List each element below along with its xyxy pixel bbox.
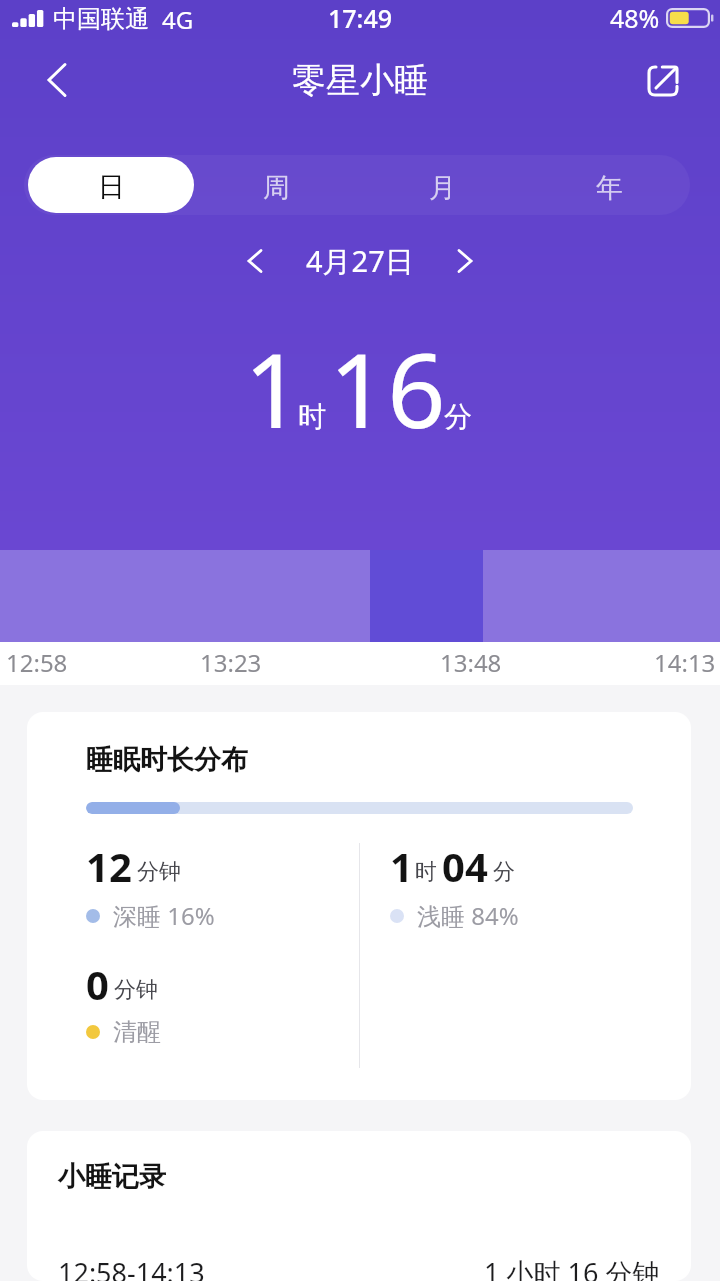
staticText: 4G (162, 3, 194, 36)
staticText: 17:49 (328, 1, 393, 35)
button[interactable]: 月 (356, 155, 523, 215)
staticText: 时 (415, 858, 437, 886)
staticText: 清醒 (113, 1017, 161, 1047)
button[interactable]: Back (27, 50, 87, 110)
staticText: 睡眠时长分布 (86, 743, 248, 777)
button[interactable]: Previous day (230, 236, 280, 286)
staticText: 日 (98, 170, 125, 204)
button[interactable]: Share (633, 51, 693, 111)
staticText: 分 (444, 399, 472, 434)
button[interactable]: 小睡记录 (27, 1131, 691, 1281)
staticText: 12:58 (6, 646, 68, 679)
staticText: 13:48 (440, 646, 502, 679)
button[interactable]: 年 (523, 155, 690, 215)
staticText: 小睡记录 (58, 1160, 166, 1194)
staticText: 0 (86, 957, 109, 1011)
staticText: 分 (493, 858, 515, 886)
staticText: 1 小时 16 分钟 (484, 1254, 660, 1281)
staticText: 月 (429, 171, 456, 205)
staticText: 分钟 (137, 858, 181, 886)
button[interactable]: 日 (28, 157, 194, 213)
staticText: 4月27日 (306, 241, 414, 281)
staticText: 深睡 16% (113, 899, 215, 932)
staticText: 1 (390, 839, 413, 893)
staticText: 13:23 (200, 646, 262, 679)
staticText: 周 (263, 171, 290, 205)
staticText: 16 (329, 319, 446, 458)
staticText: 浅睡 84% (417, 899, 519, 932)
staticText: 分钟 (114, 976, 158, 1004)
staticText: 48% (610, 1, 660, 35)
staticText: 时 (298, 399, 326, 434)
staticText: 零星小睡 (292, 59, 428, 102)
staticText: 12:58-14:13 (58, 1254, 205, 1281)
staticText: 14:13 (654, 646, 716, 679)
staticText: 1 (244, 319, 303, 458)
staticText: 04 (442, 839, 488, 893)
staticText: 年 (596, 171, 623, 205)
staticText: 中国联通 (53, 4, 149, 34)
button[interactable]: Next day (440, 236, 490, 286)
button[interactable]: 周 (190, 155, 356, 215)
staticText: 12 (86, 839, 132, 893)
